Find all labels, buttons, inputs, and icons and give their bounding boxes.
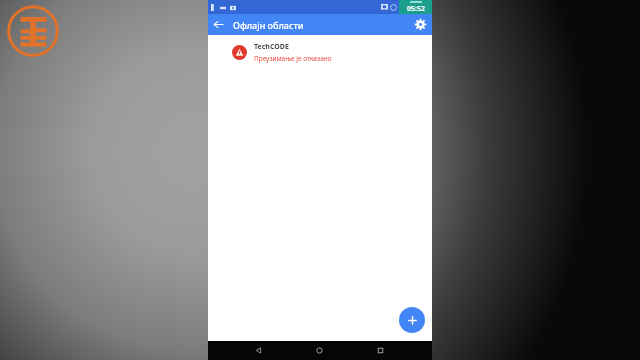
button[interactable]: Recent apps	[371, 341, 390, 360]
button[interactable]: Back	[208, 14, 229, 35]
button[interactable]: Add offline area	[399, 307, 425, 333]
button[interactable]: TechCODE	[208, 39, 432, 65]
button[interactable]: Home	[310, 341, 329, 360]
button[interactable]: Back	[249, 341, 268, 360]
staticText: 05:52	[407, 4, 425, 14]
other: TechCODE logo	[6, 4, 60, 58]
staticText: Преузимање је отказано	[254, 54, 332, 63]
staticText: TechCODE	[254, 42, 289, 52]
staticText: Офлајн области	[233, 19, 410, 31]
button[interactable]: Settings	[410, 14, 431, 35]
